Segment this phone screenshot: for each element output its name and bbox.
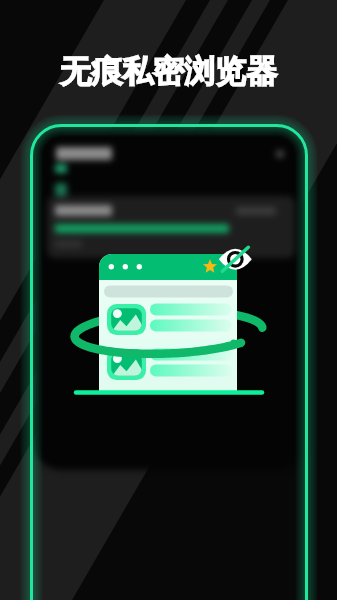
staticText: 无痕私密浏览器 — [0, 52, 337, 91]
button[interactable]: 无痕私密浏览器 — [0, 52, 337, 91]
